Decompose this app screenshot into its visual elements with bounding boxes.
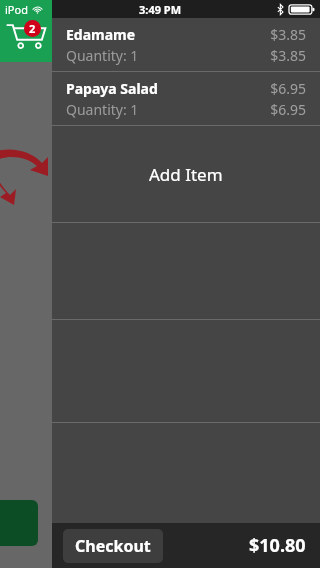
staticText: Quantity: 1 <box>66 100 139 119</box>
staticText: Papaya Salad <box>66 79 158 98</box>
button[interactable]: Cart, 2 items <box>0 0 52 62</box>
staticText: 2 <box>29 21 36 36</box>
button[interactable]: Edamame <box>52 18 320 71</box>
button[interactable]: Store tile <box>0 500 38 546</box>
staticText: $3.85 <box>270 46 306 65</box>
staticText: iPod <box>5 2 28 17</box>
staticText: Edamame <box>66 25 136 44</box>
button[interactable]: Papaya Salad <box>52 72 320 125</box>
staticText: $6.95 <box>270 79 306 98</box>
staticText: 3:49 PM <box>139 2 182 17</box>
button[interactable]: Checkout <box>63 529 163 563</box>
staticText: Checkout <box>75 535 151 557</box>
staticText: Add Item <box>149 163 223 186</box>
staticText: Quantity: 1 <box>66 46 139 65</box>
button[interactable]: Add Item <box>52 126 320 222</box>
staticText: $6.95 <box>270 100 306 119</box>
staticText: $3.85 <box>270 25 306 44</box>
staticText: $10.80 <box>249 533 306 558</box>
